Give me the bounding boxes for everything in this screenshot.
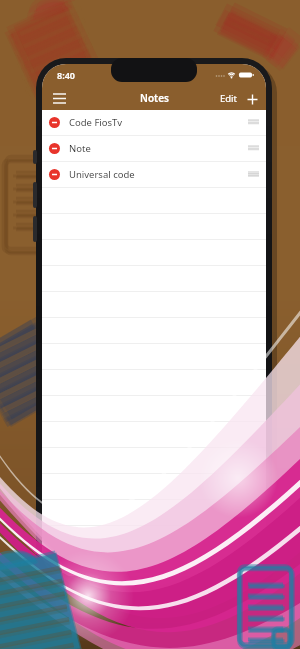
button[interactable] [42,370,266,396]
button[interactable]: Delete Note [42,136,266,162]
button[interactable] [42,526,266,552]
button[interactable] [42,188,266,214]
button[interactable]: Menu [49,88,69,108]
button[interactable] [42,448,266,474]
button[interactable]: Add note [243,90,261,108]
button[interactable] [42,214,266,240]
button[interactable] [42,318,266,344]
button[interactable]: Delete Universal code [49,169,60,180]
staticText: Code FiosTv [69,116,123,129]
staticText: Notes [140,91,169,105]
button[interactable] [42,292,266,318]
staticText: Edit [220,92,238,105]
button[interactable] [42,422,266,448]
staticText: Note [69,142,91,155]
button[interactable]: Delete Code FiosTv [42,110,266,136]
button[interactable] [42,500,266,526]
button[interactable]: Delete Universal code [42,162,266,188]
staticText: Universal code [69,168,135,181]
staticText: 8:40 [57,69,75,81]
button[interactable] [42,474,266,500]
button[interactable] [42,266,266,292]
button[interactable]: Edit [217,88,241,109]
button[interactable] [42,240,266,266]
button[interactable] [42,344,266,370]
button[interactable] [42,396,266,422]
button[interactable]: Delete Code FiosTv [49,117,60,128]
button[interactable]: Delete Note [49,143,60,154]
